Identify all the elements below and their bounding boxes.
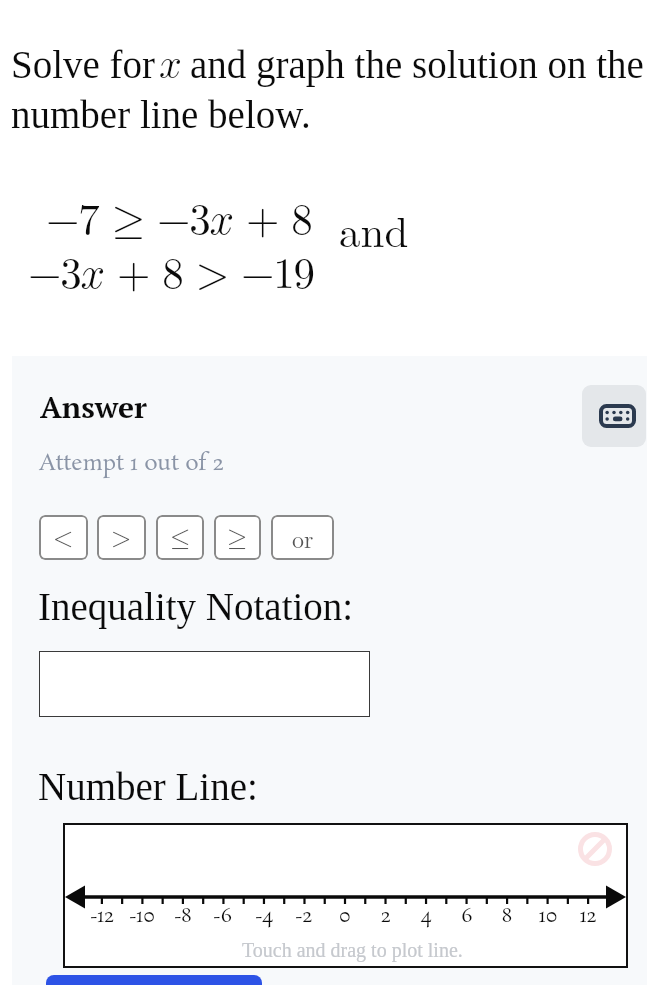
- staticText: <: [53, 525, 74, 551]
- staticText: −7 ≥ −3𝑥 + 8: [46, 199, 312, 242]
- staticText: Answer: [40, 387, 147, 427]
- staticText: 𝑥: [159, 45, 182, 85]
- staticText: -6: [213, 902, 233, 930]
- button[interactable]: <: [39, 515, 88, 560]
- button[interactable]: Number line plot area: [63, 823, 628, 968]
- staticText: -12: [90, 902, 115, 930]
- staticText: ≤: [170, 525, 191, 551]
- button[interactable]: >: [97, 515, 146, 560]
- button[interactable]: Toggle math keyboard: [582, 385, 646, 447]
- staticText: Touch and drag to plot line.: [242, 939, 463, 961]
- staticText: -2: [295, 902, 313, 930]
- staticText: 12: [580, 902, 597, 930]
- staticText: 4: [421, 902, 432, 930]
- staticText: and graph the solution on the: [190, 43, 644, 86]
- staticText: 6: [461, 902, 473, 930]
- staticText: -10: [129, 902, 156, 930]
- staticText: Solve for: [11, 43, 156, 86]
- staticText: 2: [381, 902, 391, 930]
- staticText: -4: [255, 902, 274, 930]
- staticText: -8: [174, 902, 192, 930]
- staticText: number line below.: [11, 93, 311, 136]
- button[interactable]: or: [271, 515, 334, 560]
- staticText: −3𝑥 + 8 > −19: [28, 253, 314, 296]
- button[interactable]: Inequality notation answer field: [39, 651, 370, 717]
- staticText: >: [111, 525, 132, 551]
- button[interactable]: ≤: [156, 515, 204, 560]
- button[interactable]: Submit answer: [46, 975, 262, 985]
- button[interactable]: ≥: [214, 515, 261, 560]
- staticText: 10: [539, 902, 558, 930]
- staticText: 0: [339, 902, 351, 930]
- staticText: Number Line:: [38, 765, 258, 808]
- staticText: or: [292, 521, 314, 555]
- staticText: 8: [502, 902, 512, 930]
- staticText: ≥: [227, 525, 248, 551]
- staticText: Attempt 1 out of 2: [39, 448, 224, 479]
- staticText: and: [339, 199, 409, 260]
- staticText: Inequality Notation:: [38, 585, 354, 628]
